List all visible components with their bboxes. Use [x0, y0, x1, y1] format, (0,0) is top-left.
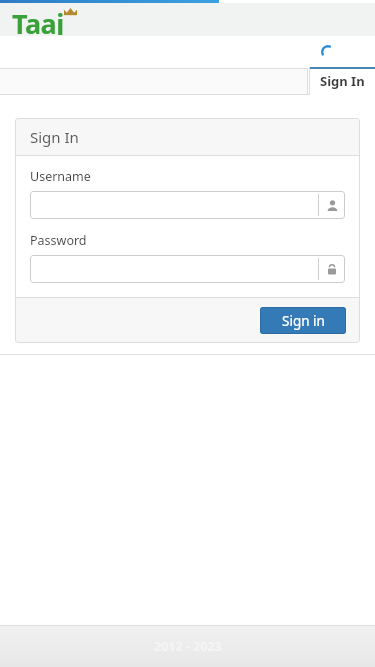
staticText: Sign In	[30, 127, 79, 147]
button[interactable]: Sign In	[309, 67, 375, 95]
button[interactable]: Sign in	[260, 307, 346, 334]
button[interactable]: Taaj home	[12, 5, 90, 35]
staticText: Username	[30, 168, 91, 185]
button[interactable]	[0, 68, 308, 95]
staticText: Password	[30, 232, 87, 249]
button[interactable]: Password field	[30, 255, 345, 283]
staticText: Sign in	[282, 312, 325, 330]
staticText: Sign In	[320, 72, 365, 90]
button[interactable]: Username field	[30, 191, 345, 219]
staticText: 2012 - 2023	[154, 638, 222, 655]
staticText: Taaj	[12, 5, 64, 35]
